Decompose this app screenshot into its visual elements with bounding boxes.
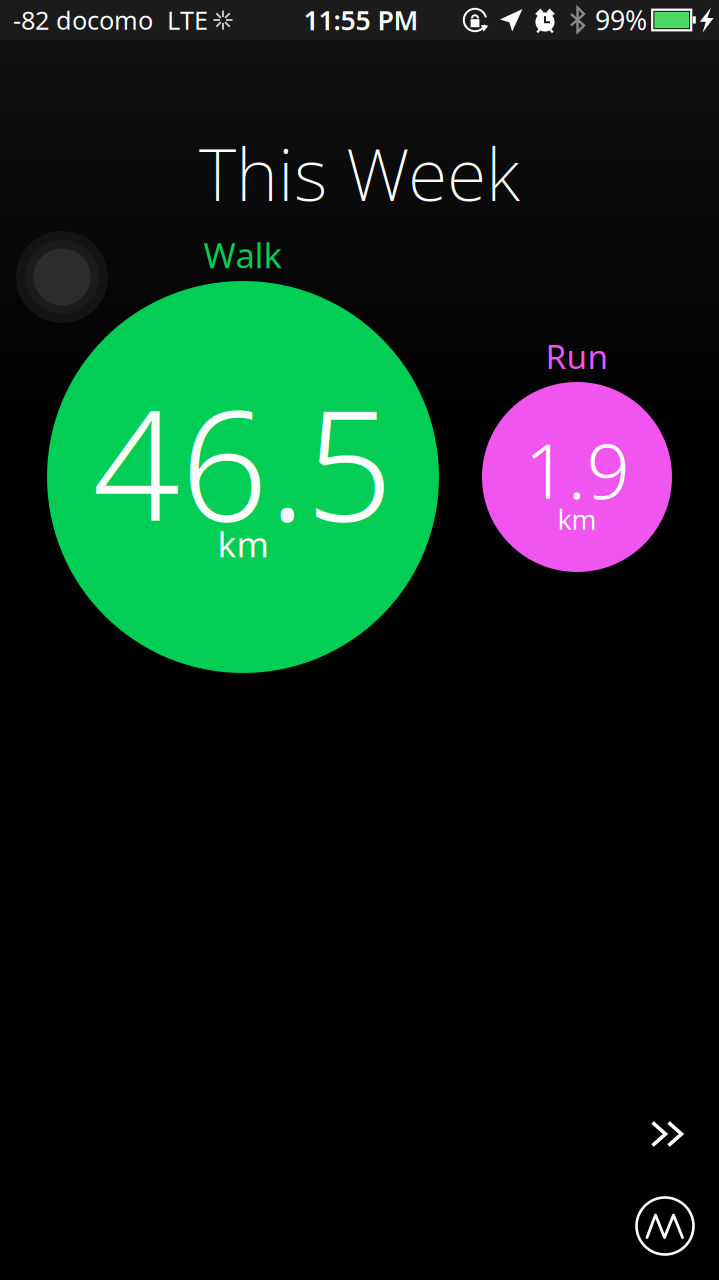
staticText: LTE (167, 3, 208, 37)
staticText: km (557, 502, 596, 537)
button[interactable]: 46.5 (47, 281, 439, 673)
staticText: Run (545, 334, 608, 378)
staticText: 99% (595, 2, 647, 38)
staticText: km (217, 521, 268, 567)
staticText: 1.9 (524, 419, 629, 520)
button[interactable]: Next week (650, 1120, 684, 1148)
button[interactable]: 1.9 (482, 382, 672, 572)
staticText: Walk (203, 232, 282, 278)
staticText: This Week (199, 125, 520, 221)
staticText: 11:55 PM (303, 2, 418, 38)
staticText: 46.5 (92, 360, 393, 563)
staticText: -82 docomo (13, 3, 153, 37)
button[interactable]: Moves (635, 1196, 695, 1256)
